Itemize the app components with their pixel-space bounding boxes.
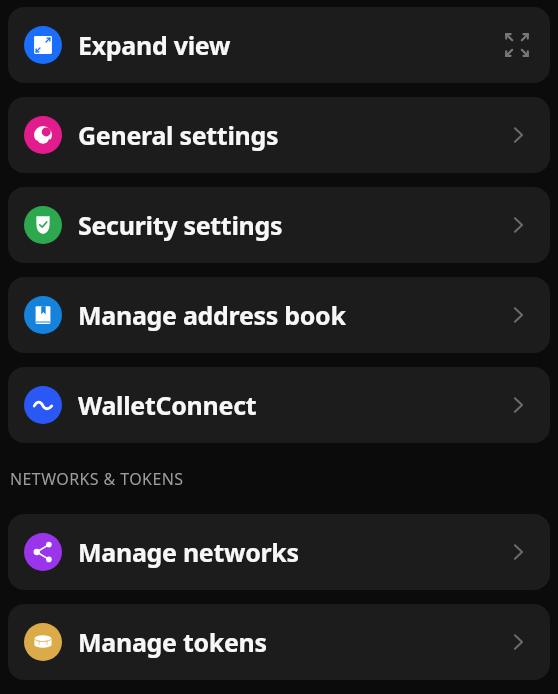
staticText: Manage networks: [78, 535, 299, 569]
staticText: Expand view: [78, 28, 231, 62]
button[interactable]: Manage networks: [8, 514, 550, 590]
staticText: Manage address book: [78, 298, 346, 332]
staticText: Security settings: [78, 208, 283, 242]
button[interactable]: General settings: [8, 97, 550, 173]
staticText: Manage tokens: [78, 625, 267, 659]
button[interactable]: Manage tokens: [8, 604, 550, 680]
button[interactable]: WalletConnect: [8, 367, 550, 443]
staticText: NETWORKS & TOKENS: [10, 468, 184, 490]
staticText: WalletConnect: [78, 388, 257, 422]
button[interactable]: Security settings: [8, 187, 550, 263]
button[interactable]: Expand view: [8, 7, 550, 83]
button[interactable]: Manage address book: [8, 277, 550, 353]
staticText: General settings: [78, 118, 279, 152]
other: Expand view: [502, 30, 532, 60]
